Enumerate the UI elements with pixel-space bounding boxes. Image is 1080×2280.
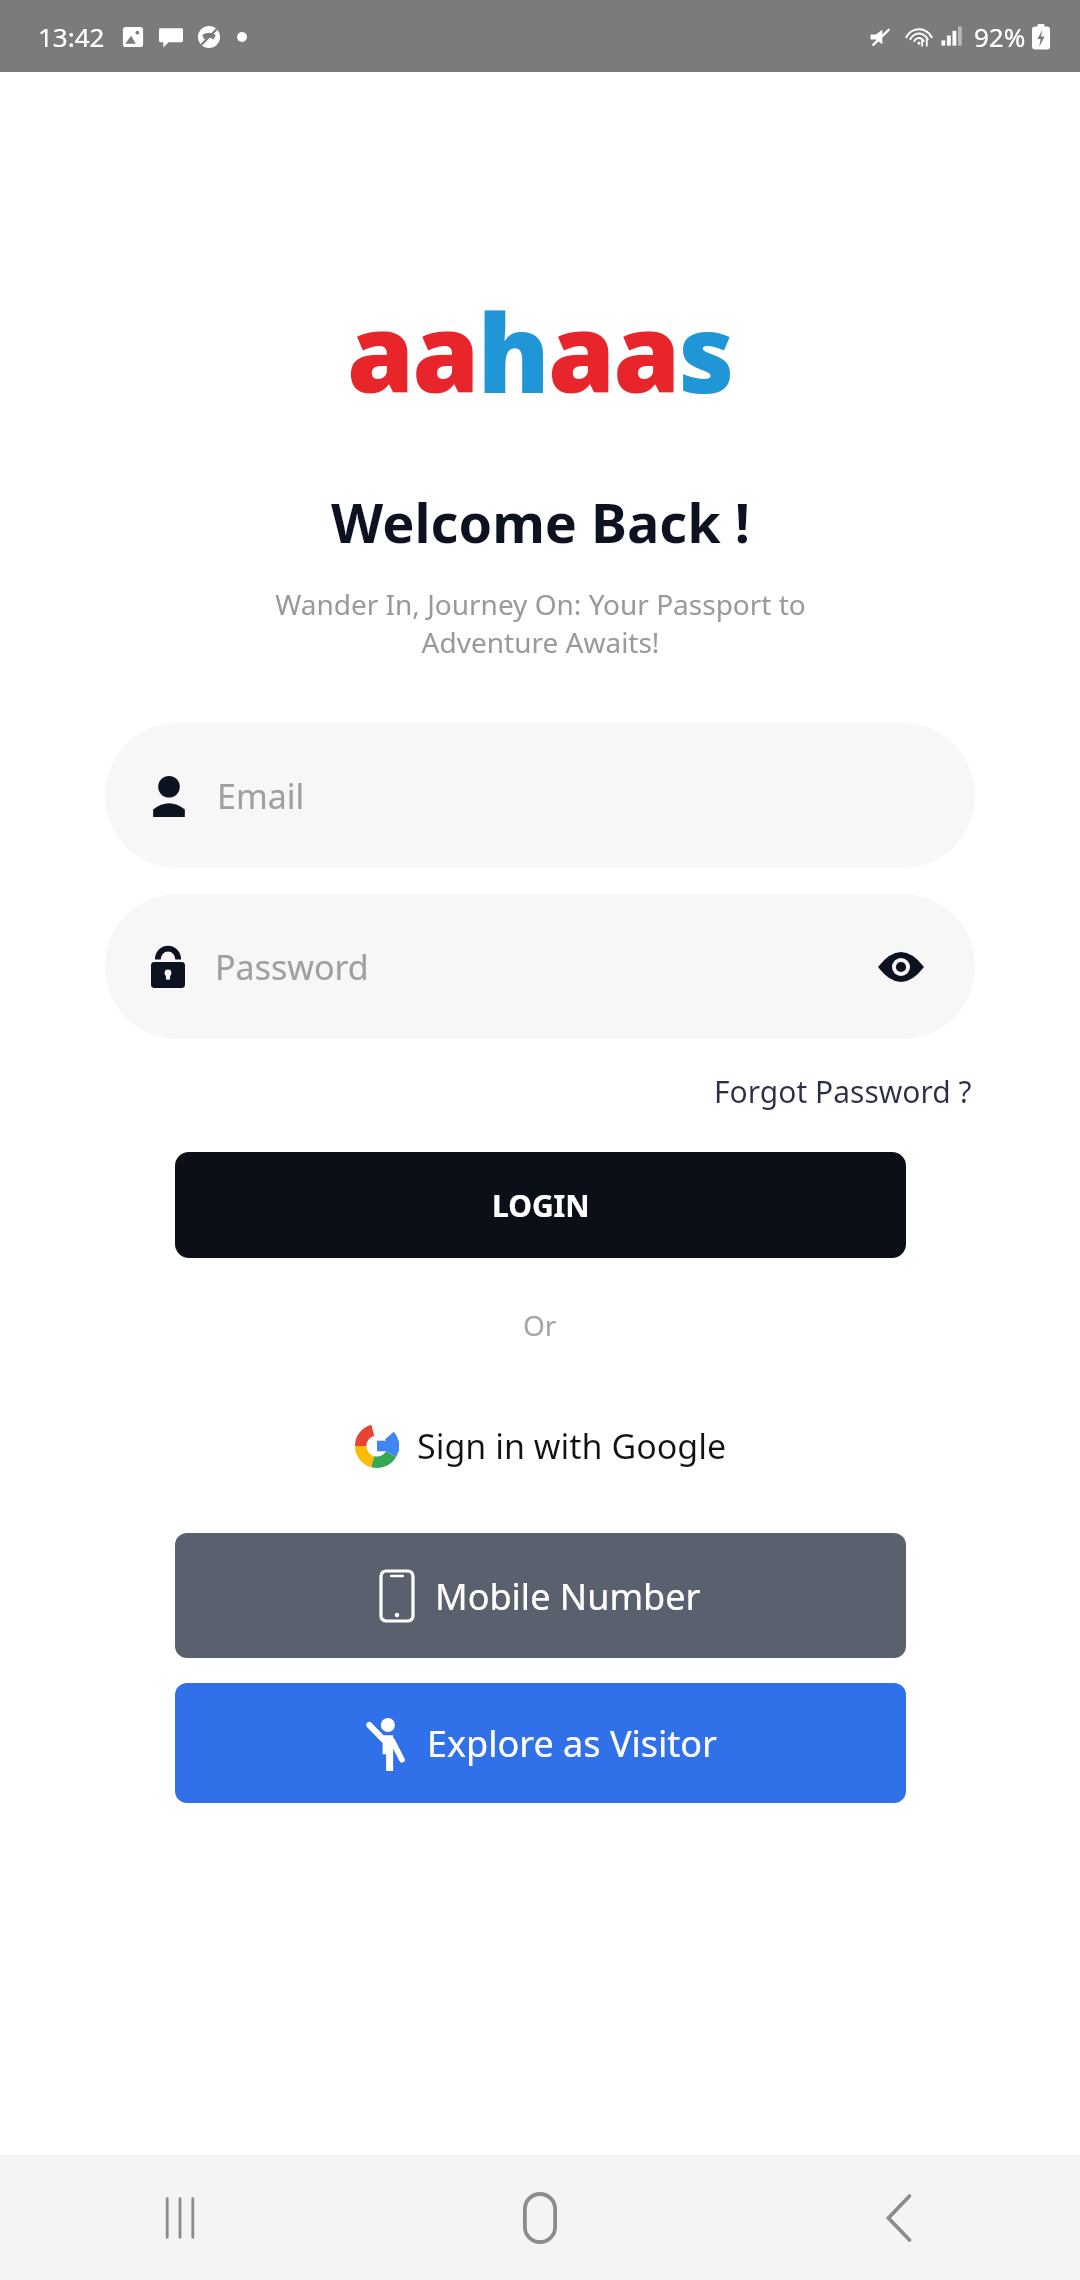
button[interactable]: Email	[105, 723, 975, 868]
staticText: Explore as Visitor	[427, 1719, 717, 1768]
button[interactable]: Explore as Visitor	[175, 1683, 906, 1803]
staticText: Or	[523, 1306, 557, 1344]
button[interactable]: Back	[720, 2155, 1080, 2280]
staticText: Forgot Password ?	[714, 1071, 972, 1112]
button[interactable]: Mobile Number	[175, 1533, 906, 1658]
staticText: 13:42	[38, 19, 105, 54]
staticText: LOGIN	[492, 1185, 590, 1226]
staticText: 92%	[974, 19, 1026, 54]
staticText: Welcome Back !	[331, 485, 750, 559]
button[interactable]: Forgot Password ?	[708, 1065, 978, 1118]
staticText: Wander In, Journey On: Your Passport to …	[275, 585, 806, 661]
button[interactable]: Password	[105, 894, 975, 1039]
staticText: Password	[215, 944, 369, 990]
staticText: Email	[217, 773, 305, 819]
button[interactable]: Recents	[0, 2155, 360, 2280]
staticText: Mobile Number	[435, 1572, 701, 1621]
button[interactable]: Sign in with Google	[175, 1386, 906, 1505]
staticText: Sign in with Google	[417, 1423, 727, 1469]
button[interactable]: Show password	[873, 939, 929, 995]
button[interactable]: LOGIN	[175, 1152, 906, 1258]
button[interactable]: Home	[360, 2155, 720, 2280]
staticText: aahaas	[347, 278, 733, 425]
